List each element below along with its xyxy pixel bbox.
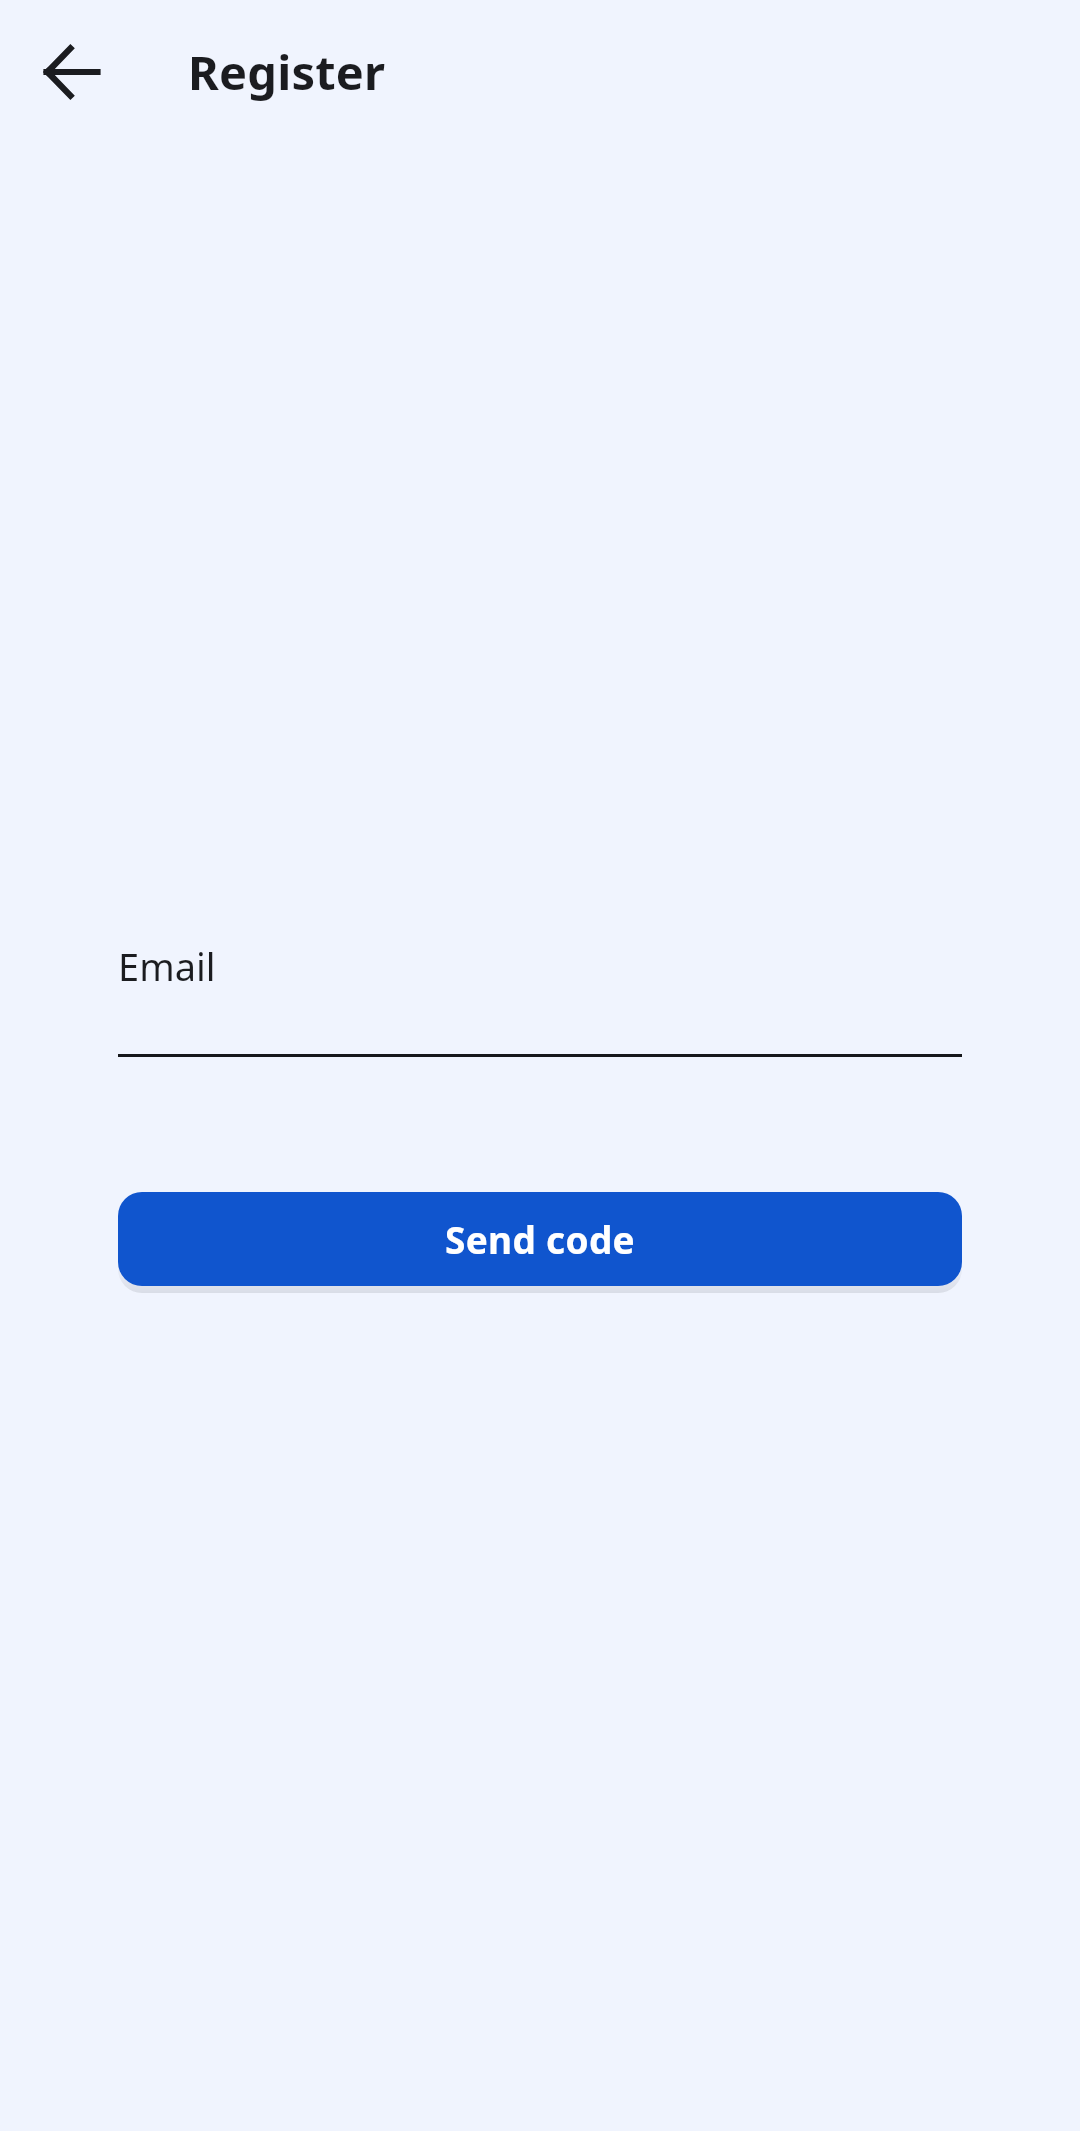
staticText: Send code	[445, 1214, 635, 1264]
button[interactable]: Send code	[118, 1192, 962, 1286]
button[interactable]: Back	[24, 24, 120, 120]
staticText: Register	[188, 40, 386, 104]
staticText: Email	[118, 940, 216, 992]
